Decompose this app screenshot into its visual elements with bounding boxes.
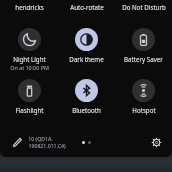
other: Battery Saver xyxy=(132,28,155,51)
button[interactable]: Hotspot xyxy=(115,78,172,115)
staticText: Do Not Disturb xyxy=(122,3,166,11)
staticText: 190821.011.C4) xyxy=(28,142,66,149)
button[interactable]: Bluetooth xyxy=(58,78,115,115)
button[interactable]: Settings xyxy=(149,135,164,150)
staticText: Auto-rotate xyxy=(70,3,104,11)
button[interactable]: Night Light xyxy=(0,27,58,72)
button[interactable]: Dark theme xyxy=(58,27,115,64)
button[interactable]: Edit tiles xyxy=(10,133,68,151)
other: Flashlight xyxy=(18,79,41,102)
staticText: Flashlight xyxy=(15,106,44,114)
staticText: Bluetooth xyxy=(72,106,101,114)
staticText: Night Light xyxy=(13,55,46,63)
button[interactable]: hendricks xyxy=(0,3,58,11)
other: Night Light xyxy=(18,28,41,51)
staticText: Battery Saver xyxy=(124,55,163,63)
button[interactable]: Do Not Disturb xyxy=(115,3,172,11)
button[interactable]: Battery Saver xyxy=(115,27,172,64)
staticText: 10 (QD1A. xyxy=(28,135,53,142)
staticText: hendricks xyxy=(15,3,44,11)
button[interactable]: Flashlight xyxy=(0,78,58,115)
staticText: On at 10:00 PM xyxy=(10,64,49,71)
button[interactable]: Auto-rotate xyxy=(58,3,115,11)
other: Bluetooth xyxy=(75,79,98,102)
other: Dark theme xyxy=(75,28,98,51)
staticText: Hotspot xyxy=(132,106,156,114)
staticText: Dark theme xyxy=(69,55,104,63)
other: Edit tiles xyxy=(12,137,23,148)
other: Hotspot xyxy=(132,79,155,102)
